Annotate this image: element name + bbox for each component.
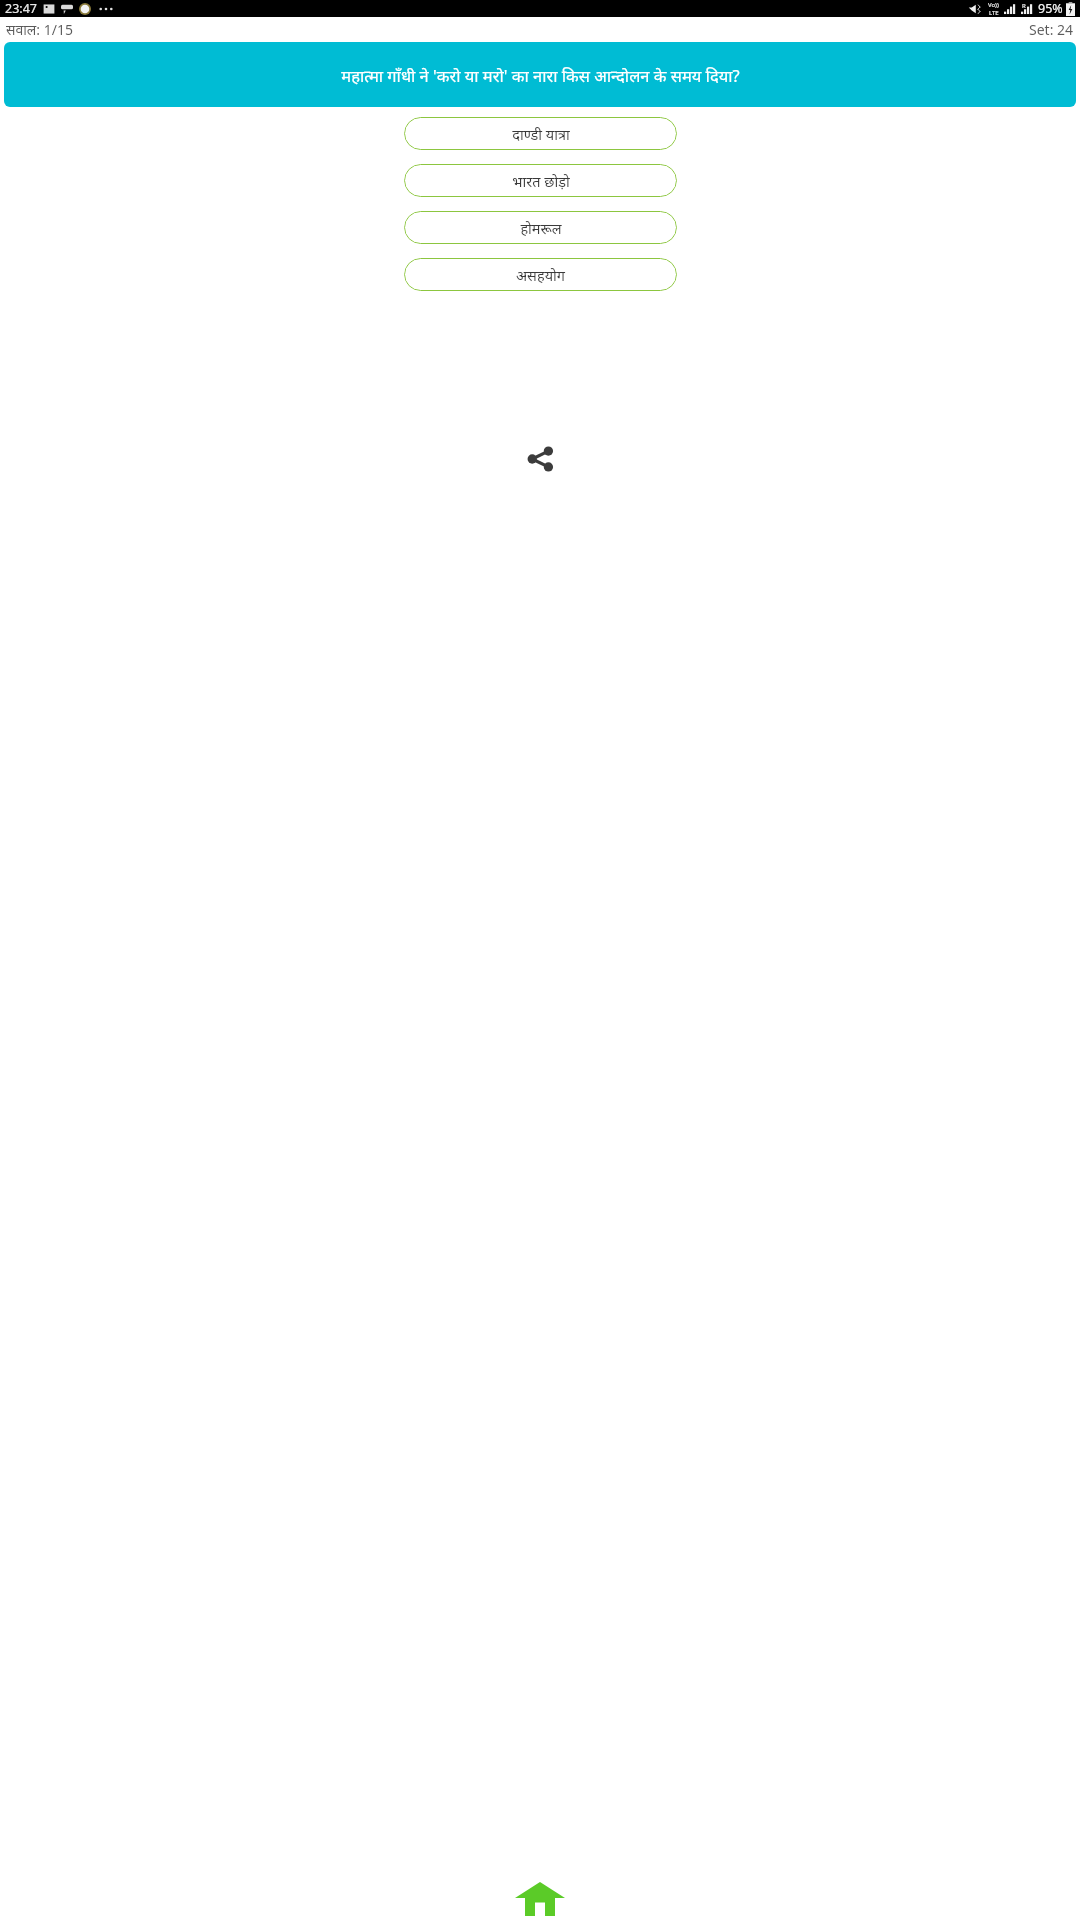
button[interactable]: Home (510, 1882, 570, 1920)
button[interactable]: दाण्डी यात्रा (404, 117, 677, 150)
staticText: 23:47 (5, 0, 37, 17)
staticText: Vo)) (988, 1, 999, 9)
button[interactable]: होमरूल (404, 211, 677, 244)
staticText: Set: 24 (1029, 20, 1074, 39)
staticText: भारत छोड़ो (512, 171, 570, 191)
button[interactable]: Share (506, 425, 574, 493)
staticText: असहयोग (516, 265, 565, 285)
button[interactable]: महात्मा गाँधी ने 'करो या मरो' का नारा कि… (4, 42, 1076, 107)
staticText: महात्मा गाँधी ने 'करो या मरो' का नारा कि… (341, 64, 740, 86)
button[interactable]: भारत छोड़ो (404, 164, 677, 197)
staticText: सवाल: 1/15 (6, 20, 73, 39)
staticText: दाण्डी यात्रा (512, 124, 570, 144)
staticText: R (1022, 2, 1026, 10)
staticText: LTE (989, 9, 999, 17)
staticText: होमरूल (520, 218, 562, 238)
button[interactable]: असहयोग (404, 258, 677, 291)
staticText: 95% (1038, 0, 1063, 17)
